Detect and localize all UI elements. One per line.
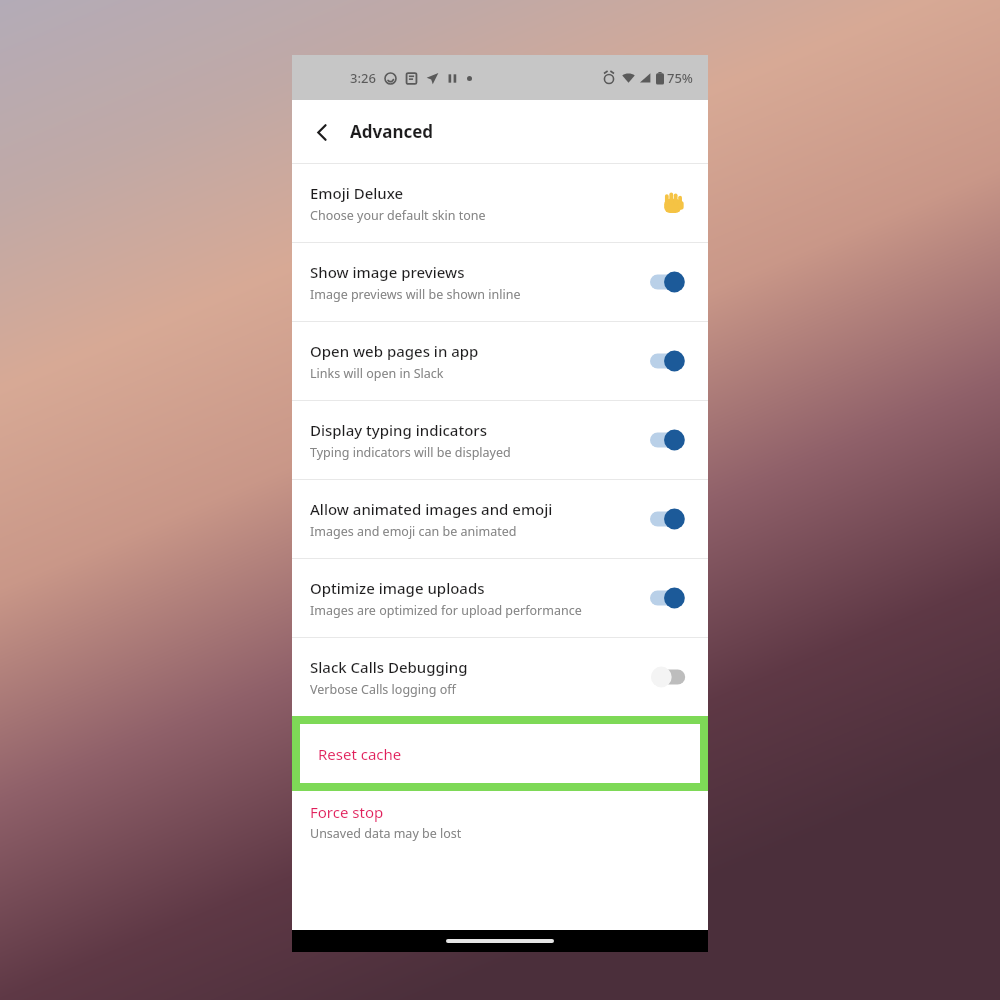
staticText: Optimize image uploads: [310, 578, 485, 598]
button[interactable]: Open web pages in app: [292, 322, 708, 400]
button[interactable]: Emoji Deluxe: [292, 164, 708, 242]
button[interactable]: Optimize image uploads: [292, 559, 708, 637]
staticText: Images are optimized for upload performa…: [310, 602, 582, 619]
staticText: Emoji Deluxe: [310, 183, 404, 203]
button[interactable]: Toggle on: [650, 269, 690, 295]
button[interactable]: Reset cache: [300, 724, 700, 783]
button[interactable]: Show image previews: [292, 243, 708, 321]
button[interactable]: Toggle on: [650, 506, 690, 532]
staticText: 3:26: [350, 69, 376, 87]
button[interactable]: Force stop: [292, 791, 708, 853]
button[interactable]: Allow animated images and emoji: [292, 480, 708, 558]
staticText: Images and emoji can be animated: [310, 523, 517, 540]
staticText: Allow animated images and emoji: [310, 499, 553, 519]
button[interactable]: Display typing indicators: [292, 401, 708, 479]
staticText: Show image previews: [310, 262, 465, 282]
staticText: Verbose Calls logging off: [310, 681, 456, 698]
staticText: Advanced: [350, 120, 434, 143]
button[interactable]: Toggle on: [650, 348, 690, 374]
button[interactable]: Toggle on: [650, 427, 690, 453]
staticText: Unsaved data may be lost: [310, 825, 462, 842]
staticText: Slack Calls Debugging: [310, 657, 468, 677]
staticText: Typing indicators will be displayed: [310, 444, 511, 461]
staticText: Image previews will be shown inline: [310, 286, 521, 303]
button[interactable]: Skin tone: [656, 186, 690, 220]
staticText: Open web pages in app: [310, 341, 479, 361]
button[interactable]: Toggle on: [650, 585, 690, 611]
staticText: Reset cache: [318, 744, 402, 764]
staticText: Force stop: [310, 802, 384, 822]
staticText: Display typing indicators: [310, 420, 487, 440]
button[interactable]: Back: [300, 110, 344, 154]
staticText: Choose your default skin tone: [310, 207, 486, 224]
button[interactable]: Slack Calls Debugging: [292, 638, 708, 716]
staticText: 75%: [667, 69, 693, 87]
button[interactable]: Toggle off: [650, 664, 690, 690]
staticText: Links will open in Slack: [310, 365, 444, 382]
